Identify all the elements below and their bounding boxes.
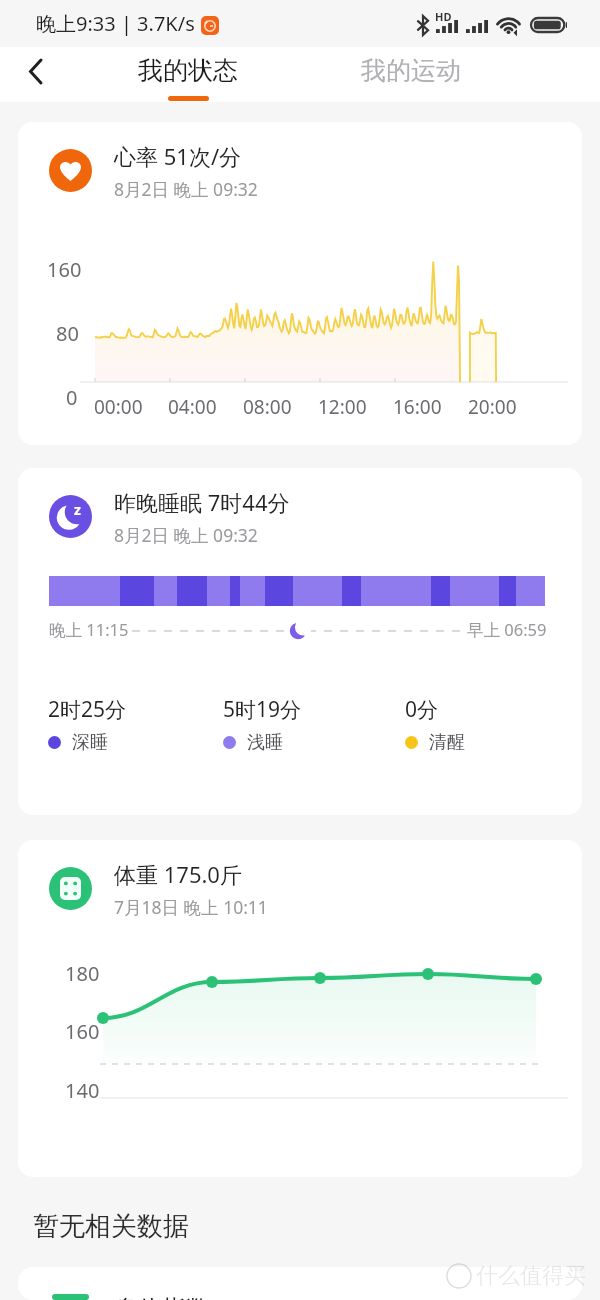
staticText: 身体指数 bbox=[114, 1294, 210, 1300]
staticText: 体重 175.0斤 bbox=[114, 859, 242, 889]
button[interactable]: 身体指数 bbox=[18, 1267, 582, 1300]
staticText: 晚上 11:15 bbox=[49, 618, 129, 641]
staticText: 我的运动 bbox=[361, 55, 461, 86]
staticText: 16:00 bbox=[393, 394, 442, 420]
button[interactable]: 我的运动 bbox=[341, 47, 481, 102]
staticText: 00:00 bbox=[94, 394, 143, 420]
staticText: 08:00 bbox=[243, 394, 292, 420]
staticText: 心率 51次/分 bbox=[114, 141, 242, 171]
staticText: 早上 06:59 bbox=[467, 618, 547, 641]
button[interactable]: z bbox=[18, 468, 582, 815]
staticText: 180 bbox=[65, 960, 100, 987]
button[interactable]: 体重 175.0斤 bbox=[18, 840, 582, 1177]
staticText: 160 bbox=[47, 256, 82, 283]
button[interactable]: 心率 51次/分 bbox=[18, 122, 582, 445]
staticText: 8月2日 晚上 09:32 bbox=[114, 177, 258, 201]
staticText: 暂无相关数据 bbox=[33, 1210, 189, 1243]
staticText: 2时25分 bbox=[48, 695, 127, 724]
button[interactable]: Back bbox=[14, 50, 56, 92]
staticText: 20:00 bbox=[468, 394, 517, 420]
staticText: 什么值得买 bbox=[476, 1262, 586, 1290]
staticText: 7月18日 晚上 10:11 bbox=[114, 895, 268, 919]
staticText: 04:00 bbox=[168, 394, 217, 420]
staticText: 浅睡 bbox=[247, 731, 283, 754]
staticText: 昨晚睡眠 7时44分 bbox=[114, 487, 290, 517]
staticText: 5时19分 bbox=[223, 695, 302, 724]
staticText: 0 bbox=[66, 384, 78, 411]
staticText: z bbox=[74, 500, 81, 519]
staticText: HD bbox=[435, 9, 452, 24]
staticText: 8月2日 晚上 09:32 bbox=[114, 523, 258, 547]
staticText: 晚上9:33 | 3.7K/s bbox=[36, 10, 195, 37]
staticText: 80 bbox=[56, 320, 79, 347]
button[interactable]: 我的状态 bbox=[118, 47, 258, 102]
staticText: 12:00 bbox=[318, 394, 367, 420]
staticText: 140 bbox=[65, 1077, 100, 1104]
staticText: 清醒 bbox=[429, 731, 465, 754]
staticText: 0分 bbox=[405, 695, 439, 724]
staticText: 深睡 bbox=[72, 731, 108, 754]
staticText: 160 bbox=[65, 1018, 100, 1045]
staticText: 我的状态 bbox=[138, 55, 238, 86]
